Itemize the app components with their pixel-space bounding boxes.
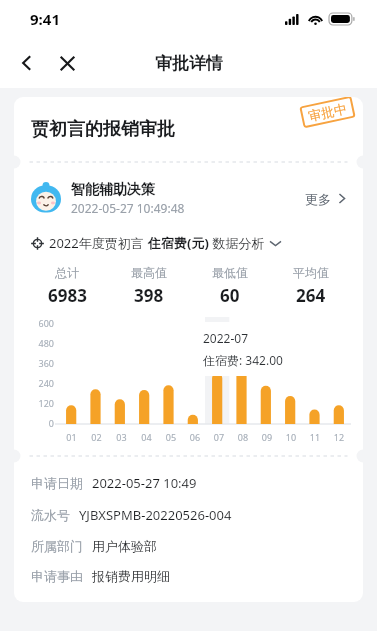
staticText: 04 xyxy=(134,431,159,443)
staticText: 11 xyxy=(303,431,327,443)
staticText: 用户体验部 xyxy=(92,538,157,554)
button[interactable]: 2022年度贾初言 xyxy=(14,234,363,252)
staticText: 最低值 xyxy=(212,265,248,280)
staticText: 2022-07 xyxy=(203,330,249,346)
staticText: 06 xyxy=(183,431,207,443)
button[interactable]: Back xyxy=(10,46,44,80)
staticText: 360 xyxy=(38,357,54,369)
staticText: YJBXSPMB-20220526-004 xyxy=(79,506,232,524)
staticText: 120 xyxy=(38,397,54,409)
staticText: 所属部门 xyxy=(31,538,83,554)
staticText: 住宿费(元) xyxy=(148,234,209,252)
staticText: 240 xyxy=(38,377,54,389)
staticText: 数据分析 xyxy=(209,234,265,252)
staticText: 0 xyxy=(48,417,54,429)
staticText: 12 xyxy=(327,431,351,443)
staticText: 264 xyxy=(296,284,326,307)
staticText: 10 xyxy=(279,431,303,443)
staticText: 480 xyxy=(38,337,54,349)
staticText: 398 xyxy=(134,284,164,307)
staticText: 9:41 xyxy=(30,9,60,29)
staticText: 07 xyxy=(207,431,231,443)
staticText: 01 xyxy=(59,431,84,443)
staticText: 60 xyxy=(220,284,240,307)
staticText: 审批中 xyxy=(307,100,348,124)
staticText: 流水号 xyxy=(31,507,70,523)
staticText: 更多 xyxy=(305,191,331,207)
staticText: 08 xyxy=(231,431,255,443)
staticText: 03 xyxy=(109,431,134,443)
staticText: 600 xyxy=(38,317,54,329)
staticText: 最高值 xyxy=(131,265,167,280)
staticText: 05 xyxy=(159,431,183,443)
staticText: 贾初言的报销审批 xyxy=(31,118,175,141)
staticText: 2022-05-27 10:49 xyxy=(92,474,197,492)
staticText: 申请日期 xyxy=(31,475,83,491)
staticText: 09 xyxy=(255,431,279,443)
staticText: 报销费用明细 xyxy=(92,568,170,584)
button[interactable]: Close xyxy=(50,46,84,80)
staticText: 2022-05-27 10:49:48 xyxy=(71,200,185,216)
staticText: 住宿费: 342.00 xyxy=(203,352,283,368)
staticText: 智能辅助决策 xyxy=(71,181,155,199)
staticText: 02 xyxy=(84,431,109,443)
staticText: 申请事由 xyxy=(31,568,83,584)
staticText: 平均值 xyxy=(293,265,329,280)
staticText: 总计 xyxy=(55,265,79,280)
button[interactable]: 智能辅助决策 xyxy=(14,178,363,219)
staticText: 6983 xyxy=(48,284,87,307)
staticText: 审批详情 xyxy=(155,53,223,74)
staticText: 2022年度贾初言 xyxy=(49,234,148,252)
